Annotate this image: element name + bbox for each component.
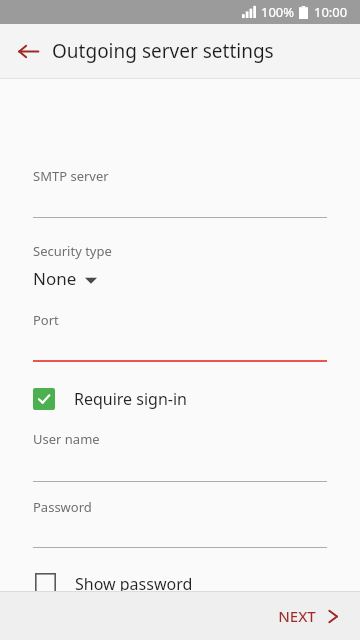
staticText: Require sign-in bbox=[74, 388, 187, 410]
staticText: None bbox=[33, 267, 77, 290]
staticText: 10:00 bbox=[314, 3, 348, 21]
button[interactable]: Require sign-in bbox=[0, 380, 360, 417]
staticText: User name bbox=[33, 430, 100, 448]
staticText: 100% bbox=[261, 3, 295, 21]
staticText: SMTP server bbox=[33, 167, 109, 185]
staticText: Outgoing server settings bbox=[52, 38, 274, 64]
button[interactable]: None bbox=[33, 267, 97, 290]
staticText: Password bbox=[33, 498, 92, 516]
staticText: Security type bbox=[33, 242, 112, 260]
staticText: NEXT bbox=[278, 606, 316, 626]
button[interactable]: Show password bbox=[0, 565, 360, 602]
button[interactable]: Back bbox=[8, 31, 48, 71]
button[interactable]: NEXT bbox=[258, 592, 360, 640]
staticText: Port bbox=[33, 311, 59, 329]
staticText: Show password bbox=[75, 573, 193, 595]
